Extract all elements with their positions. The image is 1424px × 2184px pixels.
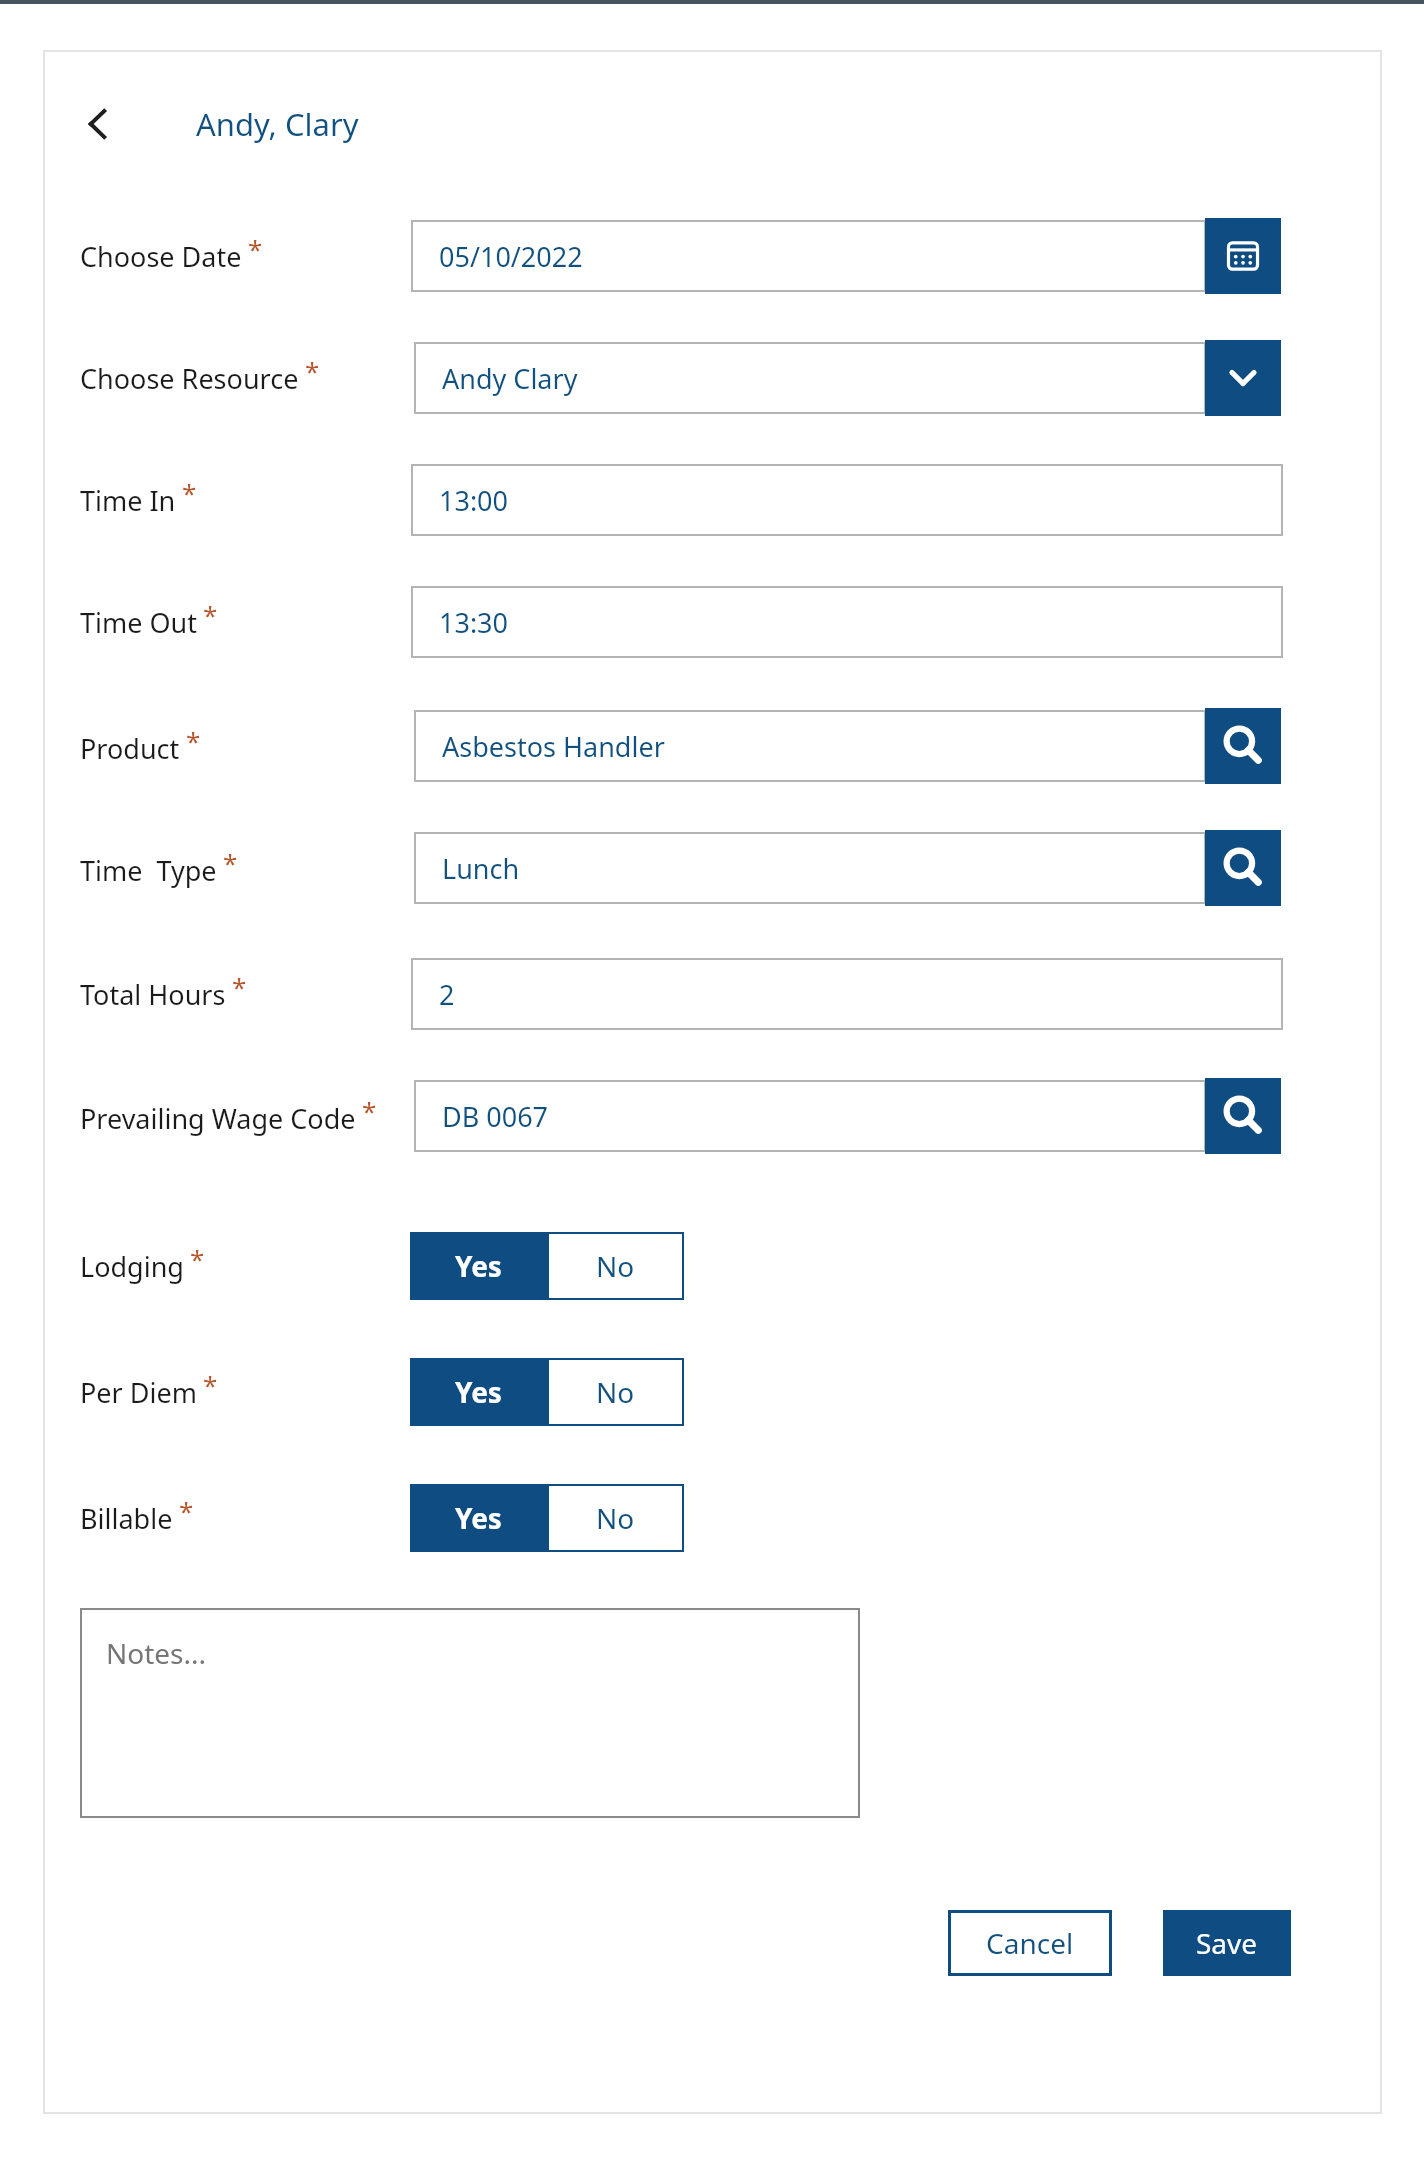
staticText: * bbox=[203, 1367, 218, 1402]
staticText: Billable bbox=[80, 1500, 173, 1537]
staticText: 05/10/2022 bbox=[439, 238, 583, 275]
staticText: Time In bbox=[80, 482, 176, 519]
staticText: * bbox=[232, 969, 247, 1004]
staticText: Andy Clary bbox=[442, 360, 578, 397]
staticText: * bbox=[203, 597, 218, 632]
button[interactable]: Yes bbox=[410, 1358, 547, 1426]
staticText: Notes... bbox=[106, 1634, 207, 1672]
staticText: Lodging bbox=[80, 1248, 184, 1285]
button[interactable]: Andy, Clary bbox=[196, 92, 359, 156]
staticText: * bbox=[223, 845, 238, 880]
staticText: * bbox=[248, 231, 263, 266]
button[interactable]: Search time type bbox=[1205, 830, 1281, 906]
staticText: Andy, Clary bbox=[196, 103, 359, 145]
staticText: * bbox=[186, 723, 201, 758]
staticText: Yes bbox=[455, 1499, 502, 1537]
staticText: 13:00 bbox=[439, 482, 509, 519]
button[interactable]: No bbox=[547, 1484, 684, 1552]
staticText: Yes bbox=[455, 1373, 502, 1411]
button[interactable]: Yes bbox=[410, 1484, 547, 1552]
staticText: No bbox=[596, 1247, 635, 1285]
staticText: 2 bbox=[439, 976, 455, 1013]
button[interactable]: Back bbox=[62, 86, 138, 162]
button[interactable]: Open calendar bbox=[1205, 218, 1281, 294]
button[interactable]: Andy Clary bbox=[414, 342, 1206, 414]
staticText: * bbox=[305, 353, 320, 388]
button[interactable]: 13:30 bbox=[411, 586, 1283, 658]
staticText: Save bbox=[1196, 1924, 1258, 1962]
staticText: Cancel bbox=[986, 1924, 1074, 1962]
button[interactable]: Lunch bbox=[414, 832, 1206, 904]
button[interactable]: Notes... bbox=[80, 1608, 860, 1818]
staticText: Product bbox=[80, 730, 180, 767]
staticText: Time Out bbox=[80, 604, 197, 641]
button[interactable]: Search wage code bbox=[1205, 1078, 1281, 1154]
button[interactable]: Search product bbox=[1205, 708, 1281, 784]
staticText: Total Hours bbox=[80, 976, 226, 1013]
button[interactable]: Open resource list bbox=[1205, 340, 1281, 416]
staticText: Prevailing Wage Code bbox=[80, 1100, 356, 1137]
staticText: Yes bbox=[455, 1247, 502, 1285]
staticText: DB 0067 bbox=[442, 1098, 549, 1135]
button[interactable]: No bbox=[547, 1232, 684, 1300]
button[interactable]: Asbestos Handler bbox=[414, 710, 1206, 782]
button[interactable]: 13:00 bbox=[411, 464, 1283, 536]
staticText: * bbox=[182, 475, 197, 510]
staticText: Asbestos Handler bbox=[442, 728, 665, 765]
staticText: * bbox=[179, 1493, 194, 1528]
button[interactable]: Cancel bbox=[948, 1910, 1112, 1976]
staticText: * bbox=[362, 1093, 377, 1128]
button[interactable]: DB 0067 bbox=[414, 1080, 1206, 1152]
button[interactable]: 2 bbox=[411, 958, 1283, 1030]
staticText: Choose Resource bbox=[80, 360, 299, 397]
button[interactable]: No bbox=[547, 1358, 684, 1426]
staticText: Lunch bbox=[442, 850, 520, 887]
staticText: Choose Date bbox=[80, 238, 242, 275]
button[interactable]: 05/10/2022 bbox=[411, 220, 1206, 292]
staticText: No bbox=[596, 1499, 635, 1537]
button[interactable]: Yes bbox=[410, 1232, 547, 1300]
button[interactable]: Save bbox=[1163, 1910, 1291, 1976]
staticText: * bbox=[190, 1241, 205, 1276]
staticText: 13:30 bbox=[439, 604, 509, 641]
staticText: Time Type bbox=[80, 852, 217, 889]
staticText: No bbox=[596, 1373, 635, 1411]
staticText: Per Diem bbox=[80, 1374, 197, 1411]
